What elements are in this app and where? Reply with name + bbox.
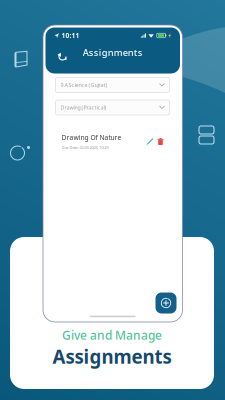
staticText: Drawing (Practical) [60,104,106,111]
button[interactable]: Drawing (Practical) [55,100,169,115]
staticText: Give and Manage [62,327,162,343]
button[interactable]: Back [53,47,70,64]
staticText: Assignments [83,46,143,59]
button[interactable]: Add assignment [155,292,176,313]
staticText: Due Date: 22-03-2024, 10:29 [61,145,108,150]
button[interactable]: Drawing Of Nature [55,127,169,155]
staticText: Drawing Of Nature [61,133,121,142]
button[interactable]: 9 A Science (Gujrat) [55,77,169,92]
staticText: Assignments [52,344,171,369]
staticText: 9 A Science (Gujrat) [60,81,107,89]
staticText: 10:11 [62,31,80,40]
